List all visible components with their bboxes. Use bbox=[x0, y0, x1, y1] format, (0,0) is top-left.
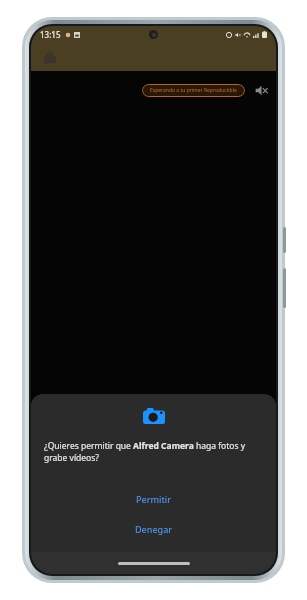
staticText: ¿Quieres permitir que Alfred Camera haga… bbox=[44, 440, 263, 464]
staticText: Permitir bbox=[136, 493, 172, 505]
staticText: 13:15 bbox=[40, 29, 61, 40]
button[interactable]: Denegar bbox=[31, 516, 276, 542]
button[interactable]: Esperando a tu primer Reproductible bbox=[142, 84, 245, 97]
staticText: Denegar bbox=[135, 523, 173, 535]
button[interactable]: Silenciar bbox=[252, 81, 270, 99]
button[interactable]: Inicio bbox=[39, 46, 61, 68]
staticText: Esperando a tu primer Reproductible bbox=[150, 87, 237, 94]
button[interactable]: Permitir bbox=[31, 486, 276, 512]
